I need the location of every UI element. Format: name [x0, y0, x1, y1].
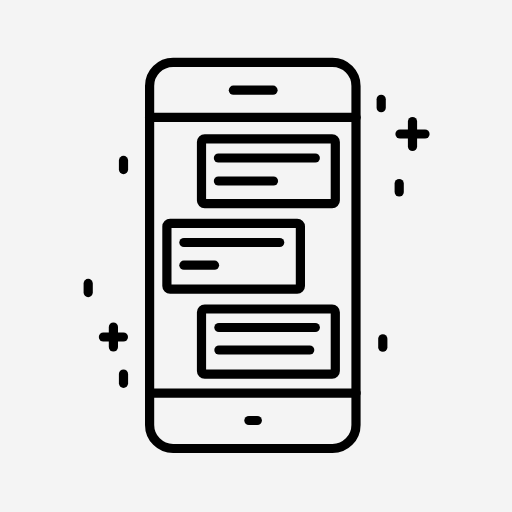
button[interactable]: Message from contact [197, 304, 340, 378]
button[interactable]: Message from contact [197, 134, 340, 208]
button[interactable]: Home button [244, 416, 262, 425]
button[interactable]: Your message [162, 219, 305, 294]
